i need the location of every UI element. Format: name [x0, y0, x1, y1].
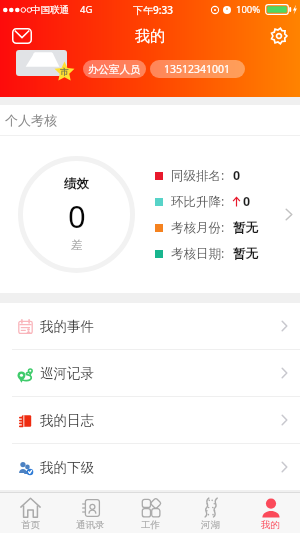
- staticText: 考核月份:: [171, 219, 228, 236]
- staticText: 13512341001: [164, 62, 231, 76]
- staticText: 0: [68, 195, 86, 237]
- staticText: 巡河记录: [40, 365, 94, 382]
- button[interactable]: 我的日志: [0, 397, 300, 443]
- button[interactable]: 巡河记录: [0, 350, 300, 396]
- button[interactable]: 通讯录: [60, 493, 120, 533]
- button[interactable]: 我的: [240, 493, 300, 533]
- staticText: 4G: [80, 3, 93, 16]
- staticText: 绩效: [64, 176, 89, 192]
- staticText: 我的日志: [40, 412, 94, 429]
- staticText: 100%: [236, 3, 261, 16]
- staticText: 环比升降:: [171, 193, 228, 210]
- staticText: 暂无: [233, 246, 258, 262]
- staticText: 下午9:33: [133, 3, 173, 17]
- staticText: 市: [60, 67, 69, 78]
- button[interactable]: 13512341001: [150, 60, 245, 78]
- staticText: 首页: [21, 519, 40, 531]
- staticText: 中国联通: [31, 4, 69, 16]
- button[interactable]: 我的下级: [0, 444, 300, 490]
- staticText: 我的: [135, 27, 165, 46]
- button[interactable]: 办公室人员: [83, 60, 146, 78]
- staticText: 0: [233, 167, 241, 184]
- button[interactable]: 河湖: [180, 493, 240, 533]
- button[interactable]: Messages: [6, 20, 38, 52]
- staticText: 暂无: [233, 220, 258, 236]
- staticText: 办公室人员: [88, 63, 141, 76]
- staticText: 我的下级: [40, 459, 94, 476]
- button[interactable]: 首页: [0, 493, 60, 533]
- staticText: 通讯录: [76, 519, 105, 531]
- staticText: 我的: [261, 519, 280, 531]
- staticText: 工作: [141, 519, 160, 531]
- staticText: 河湖: [201, 519, 220, 531]
- staticText: 考核日期:: [171, 245, 228, 262]
- staticText: 同级排名:: [171, 167, 228, 184]
- button[interactable]: 工作: [120, 493, 180, 533]
- staticText: 0: [243, 193, 251, 210]
- button[interactable]: Avatar: [16, 50, 67, 76]
- staticText: 我的事件: [40, 318, 94, 335]
- button[interactable]: Settings: [264, 21, 294, 51]
- staticText: 差: [71, 238, 83, 252]
- staticText: 个人考核: [5, 112, 57, 128]
- button[interactable]: 我的事件: [0, 303, 300, 349]
